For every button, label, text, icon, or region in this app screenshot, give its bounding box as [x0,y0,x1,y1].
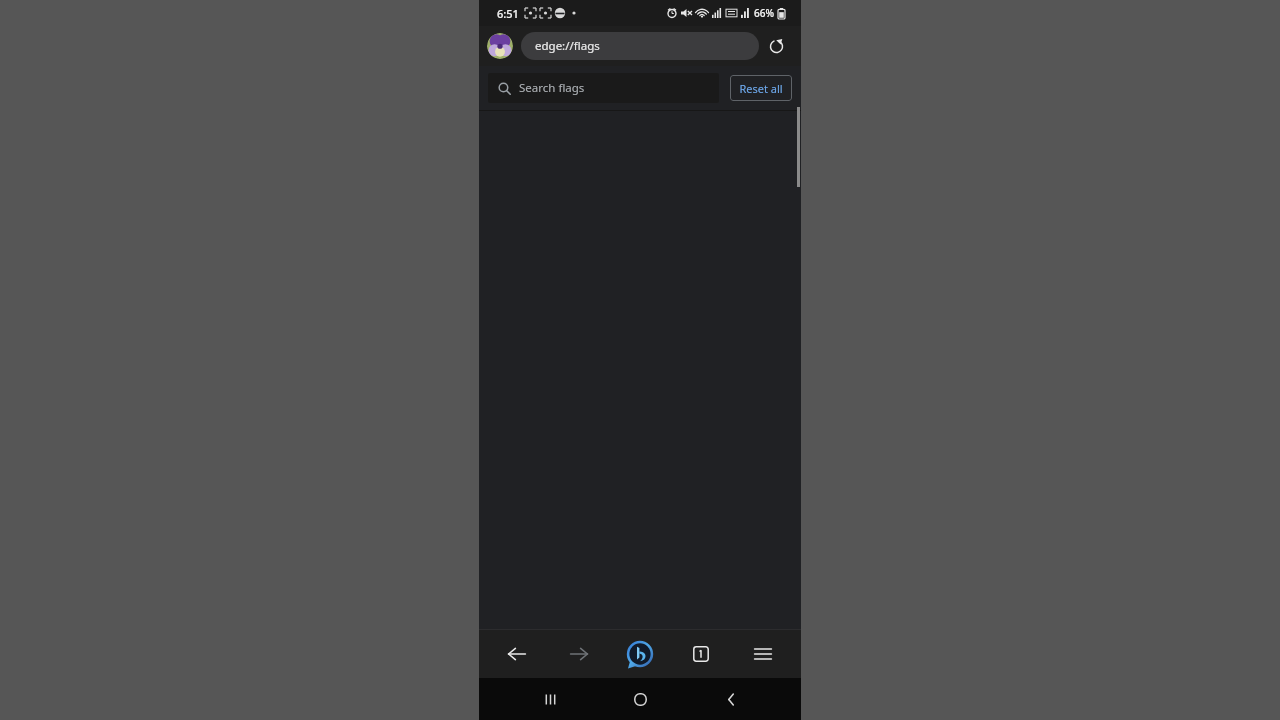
staticText: 66% [754,6,774,20]
button[interactable]: Reset all [730,75,792,101]
button[interactable]: Profile [487,33,513,59]
button[interactable]: Reload [759,29,793,63]
button[interactable]: Back [494,631,540,677]
staticText: Search flags [519,80,585,96]
button[interactable]: Home [620,679,660,719]
button[interactable]: Copilot [617,631,663,677]
button[interactable]: Tabs [678,631,724,677]
button[interactable]: Menu [740,631,786,677]
button[interactable]: Search flags [488,73,719,103]
button[interactable]: Forward [556,631,602,677]
button[interactable]: Recents [530,679,570,719]
staticText: edge://flags [535,38,600,54]
button[interactable]: edge://flags [521,32,759,60]
staticText: 6:51 [497,6,519,21]
button[interactable]: Back [711,679,751,719]
staticText: Reset all [739,81,783,96]
